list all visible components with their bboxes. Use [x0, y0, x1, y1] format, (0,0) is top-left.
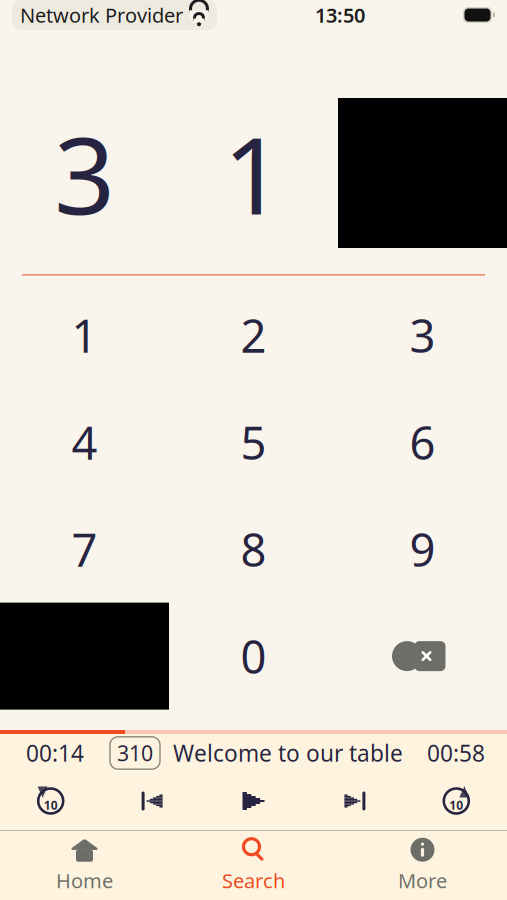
- button[interactable]: 7: [0, 496, 169, 603]
- staticText: 3: [54, 102, 115, 244]
- button[interactable]: 0: [169, 603, 338, 710]
- staticText: 9: [409, 519, 435, 579]
- button[interactable]: 2: [169, 282, 338, 389]
- button[interactable]: 8: [169, 496, 338, 603]
- staticText: 1: [71, 305, 97, 365]
- button[interactable]: Delete: [338, 603, 507, 710]
- button[interactable]: 4: [0, 389, 169, 496]
- staticText: 8: [240, 519, 266, 579]
- staticText: 4: [71, 412, 97, 472]
- button[interactable]: 1: [0, 282, 169, 389]
- button[interactable]: Skip back 10 seconds: [0, 777, 101, 825]
- staticText: 5: [240, 412, 266, 472]
- button[interactable]: Skip forward 10 seconds: [406, 777, 507, 825]
- staticText: Home: [56, 867, 113, 894]
- staticText: 00:14: [26, 738, 84, 768]
- staticText: 00:58: [427, 738, 485, 768]
- staticText: More: [398, 867, 447, 894]
- staticText: 0: [240, 626, 266, 686]
- staticText: Welcome to our table: [173, 738, 403, 768]
- staticText: 1: [223, 102, 284, 244]
- button[interactable]: Next track: [304, 777, 406, 825]
- button[interactable]: More: [338, 831, 507, 900]
- button[interactable]: Play: [203, 777, 304, 825]
- staticText: 10: [449, 797, 463, 813]
- staticText: 13:50: [315, 2, 365, 28]
- staticText: 2: [240, 305, 266, 365]
- button[interactable]: 6: [338, 389, 507, 496]
- button[interactable]: 3: [338, 282, 507, 389]
- staticText: Search: [222, 867, 285, 894]
- staticText: 7: [71, 519, 97, 579]
- staticText: 3: [409, 305, 435, 365]
- button[interactable]: 9: [338, 496, 507, 603]
- button[interactable]: 5: [169, 389, 338, 496]
- staticText: 6: [409, 412, 435, 472]
- button[interactable]: Previous track: [101, 777, 203, 825]
- button[interactable]: Home: [0, 831, 169, 900]
- staticText: Network Provider: [20, 2, 183, 28]
- staticText: 310: [117, 739, 153, 767]
- button[interactable]: Search: [169, 831, 338, 900]
- staticText: 10: [44, 797, 58, 813]
